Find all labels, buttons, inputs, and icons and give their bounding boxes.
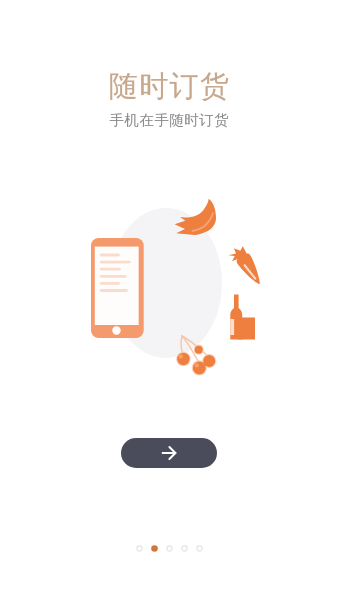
- button[interactable]: Next: [121, 438, 217, 468]
- staticText: 随时订货: [109, 68, 230, 105]
- staticText: 手机在手随时订货: [109, 111, 229, 129]
